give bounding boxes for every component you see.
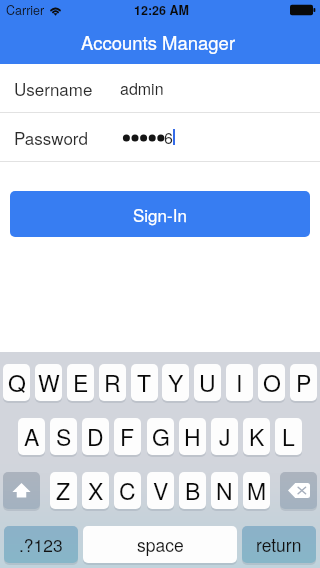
button[interactable]: B: [179, 472, 206, 509]
staticText: Z: [56, 474, 71, 507]
staticText: X: [88, 474, 104, 507]
staticText: A: [24, 420, 40, 453]
staticText: D: [87, 420, 104, 453]
staticText: Accounts Manager: [81, 29, 236, 55]
button[interactable]: M: [243, 472, 270, 509]
staticText: 12:26 AM: [134, 1, 189, 19]
button[interactable]: H: [179, 418, 206, 455]
button[interactable]: Sign-In: [10, 191, 310, 237]
staticText: M: [247, 474, 267, 507]
staticText: G: [152, 420, 170, 453]
button[interactable]: U: [194, 364, 221, 401]
staticText: space: [137, 532, 184, 557]
staticText: I: [236, 366, 243, 399]
button[interactable]: Y: [162, 364, 189, 401]
staticText: Password: [14, 125, 88, 149]
button[interactable]: D: [82, 418, 109, 455]
staticText: C: [119, 474, 136, 507]
button[interactable]: G: [147, 418, 174, 455]
staticText: K: [249, 420, 265, 453]
button[interactable]: V: [147, 472, 174, 509]
button[interactable]: K: [243, 418, 270, 455]
button[interactable]: F: [114, 418, 141, 455]
staticText: Y: [168, 366, 184, 399]
button[interactable]: Password: [0, 113, 320, 161]
button[interactable]: X: [82, 472, 109, 509]
button[interactable]: Q: [3, 364, 30, 401]
button[interactable]: .?123: [4, 526, 78, 563]
button[interactable]: I: [226, 364, 253, 401]
staticText: W: [38, 366, 60, 399]
staticText: admin: [120, 77, 164, 100]
staticText: U: [199, 366, 216, 399]
staticText: T: [137, 366, 152, 399]
button[interactable]: J: [211, 418, 238, 455]
button[interactable]: Backspace: [280, 472, 317, 509]
button[interactable]: P: [290, 364, 317, 401]
button[interactable]: A: [18, 418, 45, 455]
staticText: R: [104, 366, 121, 399]
button[interactable]: S: [50, 418, 77, 455]
staticText: B: [185, 474, 201, 507]
button[interactable]: Z: [50, 472, 77, 509]
staticText: .?123: [19, 532, 63, 557]
staticText: P: [296, 366, 312, 399]
button[interactable]: R: [99, 364, 126, 401]
button[interactable]: O: [258, 364, 285, 401]
staticText: Username: [14, 76, 93, 100]
staticText: E: [73, 366, 89, 399]
button[interactable]: Shift: [3, 472, 40, 509]
staticText: F: [120, 420, 135, 453]
button[interactable]: Username: [0, 64, 320, 112]
button[interactable]: C: [114, 472, 141, 509]
staticText: 6: [164, 126, 173, 149]
staticText: N: [216, 474, 233, 507]
button[interactable]: N: [211, 472, 238, 509]
button[interactable]: return: [242, 526, 316, 563]
staticText: Carrier: [6, 1, 45, 19]
button[interactable]: T: [131, 364, 158, 401]
staticText: J: [219, 420, 231, 453]
staticText: V: [153, 474, 169, 507]
staticText: Sign-In: [133, 202, 187, 226]
button[interactable]: W: [35, 364, 62, 401]
staticText: S: [56, 420, 72, 453]
staticText: return: [256, 532, 302, 557]
staticText: Q: [8, 366, 26, 399]
staticText: L: [282, 420, 295, 453]
staticText: H: [184, 420, 201, 453]
button[interactable]: E: [67, 364, 94, 401]
button[interactable]: space: [83, 526, 237, 563]
button[interactable]: L: [275, 418, 302, 455]
staticText: O: [263, 366, 281, 399]
